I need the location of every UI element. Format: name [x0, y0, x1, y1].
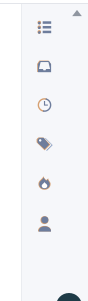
button[interactable]: All Notes: [31, 14, 57, 40]
button[interactable]: Tags: [31, 131, 57, 157]
button[interactable]: Inbox: [31, 53, 57, 79]
button[interactable]: Trending: [31, 170, 57, 196]
button[interactable]: Scroll up: [68, 4, 86, 22]
button[interactable]: Profile: [31, 210, 57, 236]
button[interactable]: Recents: [31, 92, 57, 118]
button[interactable]: Account: [56, 293, 82, 301]
